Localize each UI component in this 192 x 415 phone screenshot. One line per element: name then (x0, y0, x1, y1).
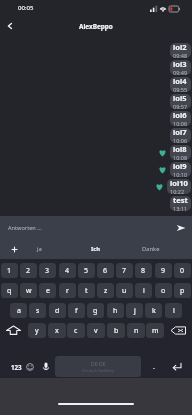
staticText: lol2 (173, 43, 187, 52)
button[interactable]: Shift (1, 323, 26, 338)
staticText: ja (37, 245, 42, 253)
button[interactable]: e (39, 283, 56, 298)
button[interactable]: 123 (6, 356, 27, 377)
button[interactable]: Backspace (166, 323, 191, 338)
staticText: x (55, 326, 59, 336)
button[interactable]: 7 (116, 263, 133, 278)
button[interactable]: Send (170, 217, 192, 239)
staticText: i (143, 286, 145, 296)
button[interactable]: lol5 (170, 94, 191, 109)
staticText: lol4 (173, 77, 187, 86)
button[interactable]: Back (0, 16, 20, 36)
button[interactable]: lol10 (167, 179, 191, 194)
staticText: test (173, 196, 188, 205)
button[interactable]: j (126, 303, 143, 318)
button[interactable]: g (87, 303, 104, 318)
button[interactable]: q (1, 283, 18, 298)
staticText: r (66, 286, 69, 296)
button[interactable]: Voice input (38, 356, 54, 377)
staticText: lol5 (173, 94, 187, 103)
staticText: z (104, 286, 108, 296)
staticText: v (94, 326, 98, 336)
button[interactable]: v (87, 323, 105, 338)
button[interactable]: lol2 (170, 43, 191, 58)
button[interactable]: Add (0, 239, 28, 259)
button[interactable]: h (107, 303, 124, 318)
button[interactable]: ja (13, 239, 65, 259)
button[interactable]: p (174, 283, 191, 298)
button[interactable]: . (145, 356, 162, 377)
staticText: 13:11 (173, 205, 188, 211)
staticText: 0 (180, 266, 185, 276)
button[interactable]: w (20, 283, 37, 298)
staticText: 123 (11, 363, 22, 371)
staticText: Ich (91, 245, 101, 253)
button[interactable]: Space (55, 356, 141, 377)
button[interactable]: m (146, 323, 164, 338)
button[interactable]: 2 (20, 263, 37, 278)
button[interactable]: n (127, 323, 145, 338)
button[interactable]: Ich (70, 239, 122, 259)
button[interactable]: c (67, 323, 85, 338)
staticText: 09:55 (173, 86, 188, 92)
staticText: 7 (122, 266, 127, 276)
staticText: w (26, 286, 32, 296)
button[interactable]: lol6 (170, 111, 191, 126)
button[interactable]: 0 (174, 263, 191, 278)
staticText: 09:48 (173, 52, 188, 58)
button[interactable]: 4 (59, 263, 76, 278)
staticText: 10:22 (170, 188, 185, 194)
staticText: 2 (26, 266, 31, 276)
staticText: Antworten ... (8, 224, 42, 232)
button[interactable]: f (68, 303, 85, 318)
button[interactable]: Enter (166, 356, 188, 377)
staticText: lol3 (173, 60, 187, 69)
button[interactable]: Danke (125, 239, 177, 259)
button[interactable]: a (10, 303, 27, 318)
staticText: Danke (142, 245, 160, 253)
button[interactable]: lol9 (170, 162, 191, 177)
staticText: b (114, 326, 119, 336)
button[interactable]: r (59, 283, 76, 298)
staticText: 10:06 (173, 120, 188, 126)
staticText: 10:06 (173, 137, 188, 143)
button[interactable]: d (49, 303, 66, 318)
button[interactable]: 1 (1, 263, 18, 278)
button[interactable]: l (165, 303, 182, 318)
button[interactable]: o (155, 283, 172, 298)
button[interactable]: x (48, 323, 66, 338)
button[interactable]: test (170, 196, 191, 211)
staticText: 3 (45, 266, 50, 276)
button[interactable]: b (107, 323, 125, 338)
button[interactable]: 8 (135, 263, 152, 278)
staticText: 00:05 (18, 4, 34, 12)
button[interactable]: 5 (78, 263, 95, 278)
staticText: e (46, 286, 50, 296)
button[interactable]: t (78, 283, 95, 298)
button[interactable]: 3 (39, 263, 56, 278)
button[interactable]: lol4 (170, 77, 191, 92)
button[interactable]: Emoji (22, 356, 38, 377)
staticText: 8 (141, 266, 146, 276)
staticText: 5 (84, 266, 89, 276)
button[interactable]: lol3 (170, 60, 191, 75)
staticText: . (153, 362, 155, 372)
button[interactable]: 6 (97, 263, 114, 278)
staticText: lol10 (170, 179, 188, 188)
button[interactable]: lol7 (170, 128, 191, 143)
button[interactable]: s (29, 303, 46, 318)
button[interactable]: z (97, 283, 114, 298)
staticText: q (7, 286, 12, 296)
button[interactable]: k (145, 303, 162, 318)
staticText: n (134, 326, 139, 336)
staticText: c (74, 326, 78, 336)
staticText: k (152, 306, 156, 316)
button[interactable]: lol8 (170, 145, 191, 160)
button[interactable]: 9 (155, 263, 172, 278)
staticText: 6 (103, 266, 108, 276)
staticText: AlexBeppo (79, 22, 113, 31)
button[interactable]: i (135, 283, 152, 298)
button[interactable]: u (116, 283, 133, 298)
staticText: t (85, 286, 88, 296)
button[interactable]: y (28, 323, 46, 338)
